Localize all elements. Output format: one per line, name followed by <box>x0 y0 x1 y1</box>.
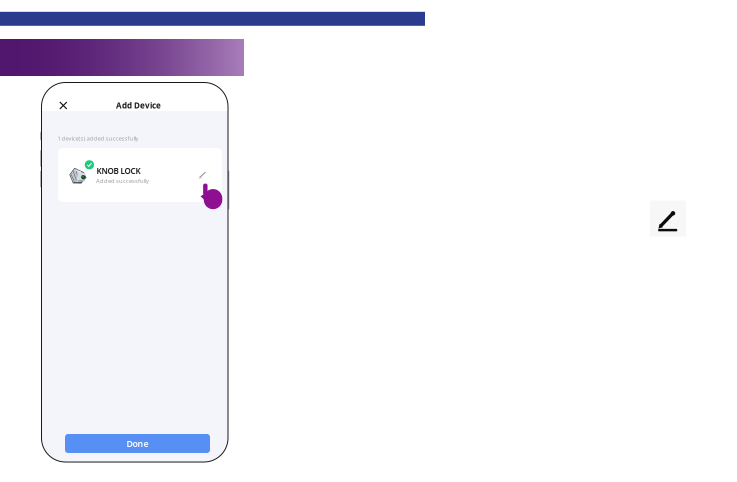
staticText: Done <box>126 437 148 449</box>
staticText: 1 device(s) added successfully <box>57 134 138 142</box>
staticText: Add Device <box>116 100 161 111</box>
button[interactable]: KNOB LOCK <box>58 148 222 202</box>
button[interactable]: Done <box>65 434 210 453</box>
staticText: KNOB LOCK <box>96 166 140 176</box>
button[interactable]: Close <box>53 95 73 115</box>
staticText: Added successfully <box>96 177 149 185</box>
